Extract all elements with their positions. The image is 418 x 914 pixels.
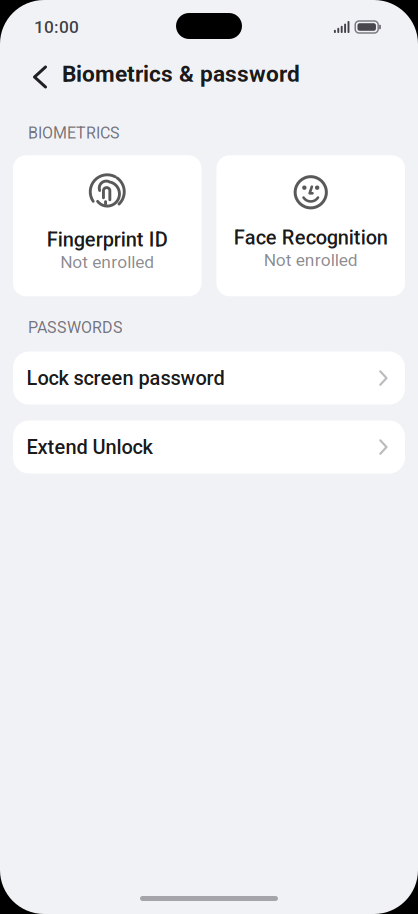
- staticText: Lock screen password: [26, 367, 224, 389]
- button[interactable]: Extend Unlock: [13, 421, 405, 474]
- staticText: Fingerprint ID: [47, 228, 168, 251]
- button[interactable]: Lock screen password: [13, 352, 405, 405]
- staticText: Not enrolled: [60, 252, 154, 272]
- staticText: Biometrics & password: [62, 61, 300, 87]
- staticText: Not enrolled: [264, 250, 358, 270]
- button[interactable]: Face Recognition: [216, 155, 405, 296]
- button[interactable]: Fingerprint ID: [13, 155, 201, 296]
- staticText: Face Recognition: [234, 226, 388, 249]
- staticText: Extend Unlock: [26, 436, 152, 458]
- staticText: PASSWORDS: [28, 318, 123, 337]
- button[interactable]: Back: [33, 67, 47, 87]
- staticText: BIOMETRICS: [28, 124, 120, 142]
- staticText: 10:00: [34, 17, 79, 37]
